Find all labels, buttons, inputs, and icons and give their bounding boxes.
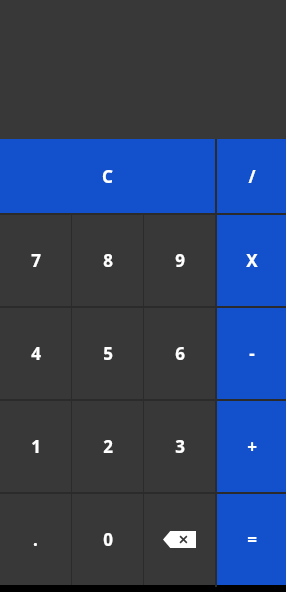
staticText: 1 [31,435,41,458]
button[interactable]: + [217,401,286,492]
button[interactable]: = [217,494,286,585]
button[interactable]: 8 [72,215,143,306]
staticText: - [249,342,255,365]
button[interactable]: 2 [72,401,143,492]
staticText: + [247,435,257,458]
staticText: 7 [31,249,41,272]
button[interactable]: 1 [0,401,71,492]
button[interactable]: 5 [72,308,143,399]
staticText: C [102,165,113,188]
staticText: = [247,528,257,551]
staticText: / [248,165,256,188]
staticText: 6 [175,342,185,365]
staticText: 9 [175,249,185,272]
button[interactable]: / [217,139,286,213]
button[interactable]: C [0,139,215,213]
staticText: . [33,528,38,551]
button[interactable]: . [0,494,71,585]
button[interactable]: Backspace [144,494,215,585]
staticText: 3 [175,435,185,458]
staticText: 8 [103,249,113,272]
button[interactable]: - [217,308,286,399]
button[interactable]: 9 [144,215,215,306]
button[interactable]: 4 [0,308,71,399]
staticText: 5 [103,342,113,365]
staticText: 0 [103,528,113,551]
button[interactable]: 0 [72,494,143,585]
button[interactable]: 3 [144,401,215,492]
staticText: X [246,249,258,272]
button[interactable]: X [217,215,286,306]
button[interactable]: 7 [0,215,71,306]
staticText: 4 [31,342,41,365]
staticText: 2 [103,435,113,458]
button[interactable]: 6 [144,308,215,399]
